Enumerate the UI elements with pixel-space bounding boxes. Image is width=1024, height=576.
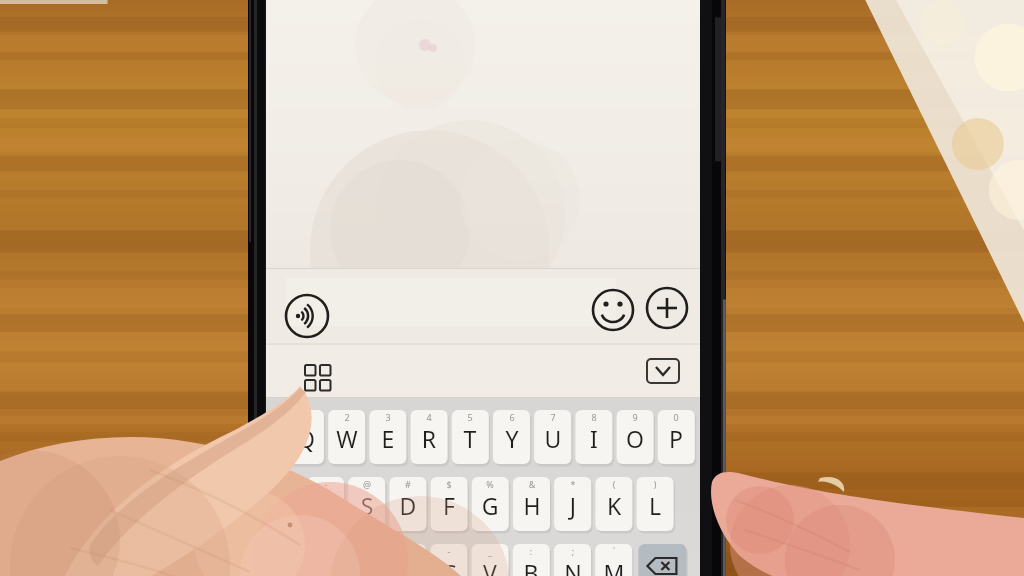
staticText: F	[429, 490, 469, 525]
staticText: U	[533, 423, 573, 458]
staticText: X	[388, 557, 428, 576]
staticText: -	[429, 545, 469, 559]
staticText: 7	[533, 411, 573, 425]
staticText: _	[470, 545, 510, 559]
staticText: B	[511, 557, 551, 576]
staticText: 0	[656, 411, 696, 425]
staticText: (	[594, 478, 634, 492]
staticText: T	[450, 423, 490, 458]
staticText: ;	[553, 545, 593, 559]
staticText: &	[512, 478, 552, 492]
staticText: D	[388, 490, 428, 525]
staticText: N	[553, 557, 593, 576]
staticText: 6	[492, 411, 532, 425]
staticText: M	[594, 557, 634, 576]
staticText: S	[347, 490, 387, 525]
button[interactable]: Emoji	[592, 289, 634, 331]
button[interactable]: Backspace	[636, 544, 686, 576]
staticText: E	[368, 423, 408, 458]
staticText: 3	[368, 411, 408, 425]
staticText: #	[388, 478, 428, 492]
staticText: O	[615, 423, 655, 458]
button[interactable]: Add attachment	[646, 287, 688, 329]
staticText: J	[553, 490, 593, 525]
staticText: +	[347, 545, 387, 559]
staticText: V	[470, 557, 510, 576]
button[interactable]: Apps	[294, 354, 328, 388]
staticText: *	[553, 478, 593, 492]
staticText: 4	[409, 411, 449, 425]
staticText: Z	[347, 557, 387, 576]
staticText: G	[470, 490, 510, 525]
staticText: I	[574, 423, 614, 458]
staticText: `	[594, 545, 634, 559]
staticText: @	[347, 478, 387, 492]
staticText: Q	[286, 423, 326, 458]
staticText: )	[635, 478, 675, 492]
staticText: Y	[492, 423, 532, 458]
staticText: 5	[450, 411, 490, 425]
staticText: A	[306, 490, 346, 525]
staticText: H	[512, 490, 552, 525]
staticText: P	[656, 423, 696, 458]
staticText: C	[429, 557, 469, 576]
staticText: $	[429, 478, 469, 492]
staticText: 9	[615, 411, 655, 425]
button[interactable]: Voice message	[286, 295, 328, 337]
staticText: 8	[574, 411, 614, 425]
staticText: :	[511, 545, 551, 559]
staticText: 2	[327, 411, 367, 425]
staticText: 1	[286, 411, 326, 425]
staticText: R	[409, 423, 449, 458]
staticText: L	[635, 490, 675, 525]
staticText: K	[594, 490, 634, 525]
staticText: -	[306, 478, 346, 492]
staticText: %	[470, 478, 510, 492]
button[interactable]: Hide keyboard	[645, 357, 681, 385]
staticText: W	[327, 423, 367, 458]
staticText: =	[388, 545, 428, 559]
